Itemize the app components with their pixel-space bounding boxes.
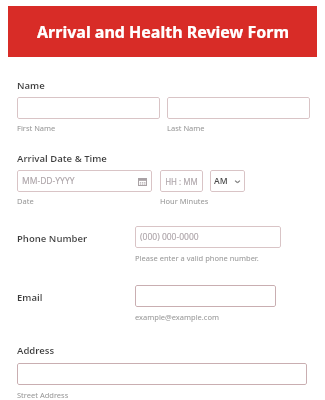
staticText: HH : MM (165, 176, 198, 187)
staticText: Hour Minutes (160, 196, 209, 206)
staticText: Date (17, 196, 34, 206)
button[interactable]: Last Name input (167, 97, 310, 119)
button[interactable]: First Name input (17, 97, 160, 119)
staticText: MM-DD-YYYY (22, 175, 138, 187)
staticText: Please enter a valid phone number. (135, 253, 259, 263)
staticText: Phone Number (17, 232, 88, 245)
staticText: Address (17, 344, 55, 357)
staticText: example@example.com (135, 312, 219, 322)
staticText: First Name (17, 123, 56, 133)
staticText: (000) 000-0000 (140, 231, 276, 243)
staticText: Email (17, 291, 43, 304)
staticText: Street Address (17, 390, 69, 400)
button[interactable]: AM or PM selector (210, 170, 245, 192)
button[interactable]: Email input (135, 285, 276, 307)
button[interactable]: Street address input (17, 363, 307, 385)
staticText: Arrival and Health Review Form (37, 21, 289, 43)
staticText: Arrival Date & Time (17, 152, 107, 165)
staticText: Last Name (167, 123, 205, 133)
button[interactable]: Hour and minutes input (160, 170, 203, 192)
staticText: AM (214, 175, 234, 187)
button[interactable]: Phone number input (135, 226, 281, 248)
staticText: Name (17, 79, 45, 92)
button[interactable]: Date input (17, 170, 152, 192)
button[interactable]: Arrival and Health Review Form (8, 6, 317, 57)
